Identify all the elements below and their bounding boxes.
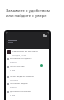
button[interactable]: Add [40, 64, 43, 67]
staticText: Почта России [10, 65, 25, 68]
staticText: Самовывоз из магазина [12, 50, 38, 53]
staticText: Завтра [10, 86, 17, 88]
button[interactable]: Самовывоз из магазина [6, 50, 49, 57]
button[interactable]: Доставка курьером [6, 90, 49, 96]
button[interactable]: Пункт выдачи заказов [6, 75, 49, 81]
staticText: Сегодня [10, 79, 19, 81]
button[interactable]: Почта России [6, 65, 49, 71]
staticText: Доставка курьером [10, 90, 31, 93]
staticText: Закажите с удобством [6, 8, 50, 13]
button[interactable]: Постамат рядом [6, 82, 49, 88]
staticText: или найдите с увере [6, 13, 47, 18]
staticText: Ru [43, 34, 47, 38]
button[interactable]: Курьером по адресу [6, 57, 49, 63]
staticText: Завтра [10, 61, 17, 63]
staticText: Сегодня, 18:00 [12, 54, 27, 57]
staticText: 2 дня [10, 94, 16, 96]
staticText: Пункт выдачи заказов [10, 75, 34, 78]
staticText: Курьером по адресу [10, 57, 32, 60]
staticText: 3 дня [10, 69, 16, 71]
staticText: Постамат рядом [10, 82, 28, 85]
